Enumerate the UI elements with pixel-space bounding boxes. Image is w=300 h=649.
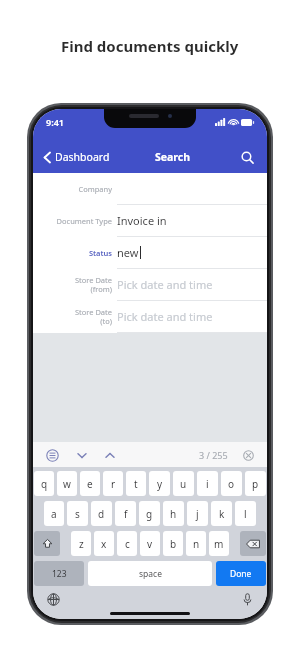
button[interactable]: b [163, 531, 183, 556]
button[interactable]: v [140, 531, 160, 556]
staticText: r [111, 477, 116, 491]
staticText: x [101, 537, 107, 551]
button[interactable]: Company [33, 173, 267, 205]
button[interactable]: Next field [72, 445, 92, 465]
button[interactable]: d [91, 501, 112, 526]
staticText: Pick date and time [117, 309, 213, 324]
staticText: Search [155, 150, 191, 164]
staticText: j [196, 507, 199, 521]
staticText: Pick date and time [117, 277, 213, 292]
button[interactable]: t [126, 471, 146, 496]
button[interactable]: p [245, 471, 266, 496]
button[interactable]: Status [33, 237, 267, 269]
staticText: Store Date (from) [74, 275, 112, 295]
staticText: z [79, 537, 84, 551]
staticText: Done [230, 568, 252, 580]
button[interactable]: Store Date (from) [33, 269, 267, 301]
button[interactable]: s [67, 501, 88, 526]
staticText: b [170, 537, 177, 551]
staticText: p [252, 477, 259, 491]
staticText: Document Type [56, 216, 112, 226]
button[interactable]: k [211, 501, 232, 526]
button[interactable]: Document Type [33, 205, 267, 237]
staticText: a [51, 507, 57, 521]
button[interactable]: q [34, 471, 54, 496]
staticText: u [180, 477, 187, 491]
staticText: h [170, 507, 177, 521]
button[interactable]: Dashboard [41, 146, 112, 168]
staticText: k [219, 507, 225, 521]
button[interactable]: l [235, 501, 256, 526]
button[interactable]: Form menu [42, 445, 62, 465]
button[interactable]: w [57, 471, 77, 496]
staticText: d [98, 507, 105, 521]
staticText: Find documents quickly [61, 36, 239, 56]
button[interactable]: f [115, 501, 136, 526]
button[interactable]: g [139, 501, 160, 526]
staticText: c [125, 537, 130, 551]
button[interactable]: Change keyboard [43, 589, 63, 609]
button[interactable]: Backspace [240, 531, 266, 556]
staticText: m [214, 537, 224, 551]
button[interactable]: 123 [34, 561, 84, 586]
staticText: s [75, 507, 80, 521]
button[interactable]: Close keyboard [238, 445, 258, 465]
button[interactable]: i [197, 471, 218, 496]
staticText: f [124, 507, 128, 521]
staticText: i [206, 477, 209, 491]
button[interactable]: y [149, 471, 170, 496]
staticText: Company [78, 184, 112, 194]
staticText: 123 [52, 568, 67, 580]
staticText: v [147, 537, 153, 551]
button[interactable]: c [117, 531, 137, 556]
staticText: Store Date (to) [74, 307, 112, 327]
staticText: l [244, 507, 247, 521]
button[interactable]: j [187, 501, 208, 526]
button[interactable]: n [186, 531, 206, 556]
staticText: Status [88, 248, 112, 258]
staticText: w [63, 477, 71, 491]
button[interactable]: e [80, 471, 100, 496]
button[interactable]: z [71, 531, 91, 556]
staticText: n [193, 537, 200, 551]
button[interactable]: h [163, 501, 184, 526]
button[interactable]: a [44, 501, 64, 526]
staticText: g [146, 507, 153, 521]
staticText: q [41, 477, 48, 491]
staticText: 3 / 255 [199, 449, 228, 461]
button[interactable]: Done [216, 561, 266, 586]
button[interactable]: space [88, 561, 212, 586]
staticText: Invoice in [117, 213, 167, 228]
button[interactable]: m [209, 531, 229, 556]
button[interactable]: Previous field [100, 445, 120, 465]
button[interactable]: Store Date (to) [33, 301, 267, 333]
staticText: Dashboard [55, 150, 110, 164]
button[interactable]: o [221, 471, 242, 496]
button[interactable]: x [94, 531, 114, 556]
staticText: y [157, 477, 163, 491]
staticText: new [117, 245, 139, 260]
staticText: e [87, 477, 93, 491]
button[interactable]: u [173, 471, 194, 496]
staticText: space [139, 568, 162, 580]
button[interactable]: Search [235, 145, 259, 169]
staticText: t [134, 477, 138, 491]
button[interactable]: r [103, 471, 123, 496]
button[interactable]: Dictation [237, 589, 257, 609]
staticText: 9:41 [46, 116, 64, 128]
staticText: o [228, 477, 235, 491]
button[interactable]: Shift [34, 531, 60, 556]
